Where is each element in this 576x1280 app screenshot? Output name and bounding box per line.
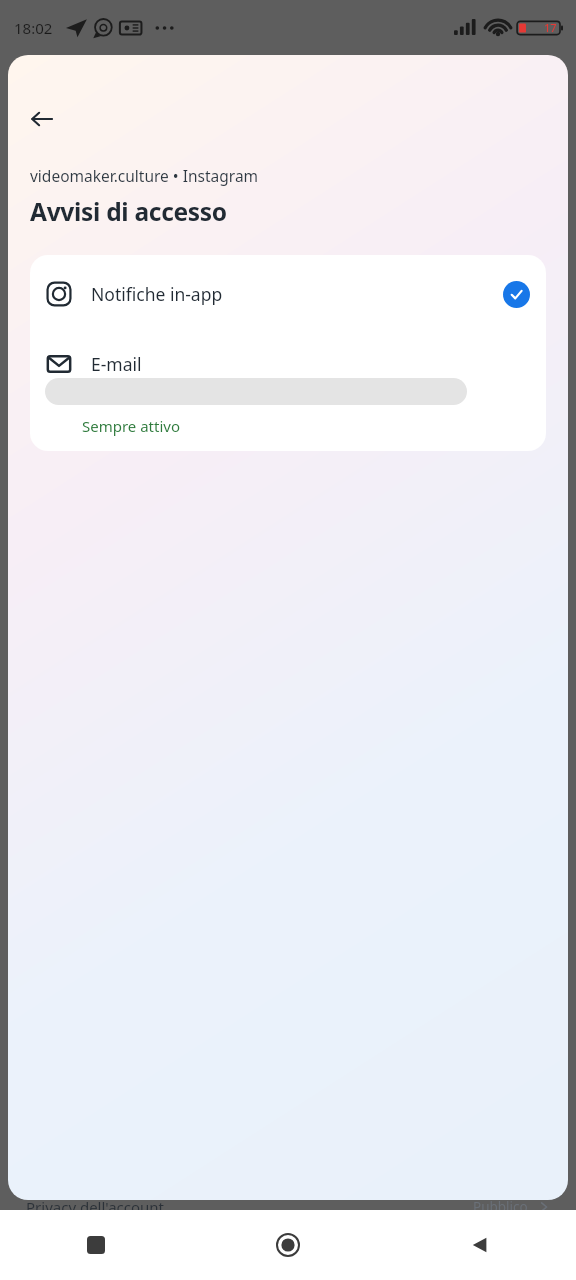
button[interactable]: Attivo [503,281,530,308]
button[interactable]: E-mail [30,333,546,395]
staticText: Sempre attivo [82,416,181,436]
button[interactable]: Home [192,1210,384,1280]
staticText: videomaker.culture • Instagram [30,165,259,186]
staticText: 18:02 [14,18,53,38]
button[interactable]: Indietro [18,95,66,143]
staticText: Notifiche in-app [91,282,223,306]
staticText: Privacy dell'account [26,1197,164,1217]
staticText: Pubblico [473,1198,528,1216]
staticText: E-mail [91,352,142,376]
button[interactable]: Indietro [384,1210,576,1280]
staticText: 17 [544,20,557,35]
button[interactable]: Recenti [0,1210,192,1280]
button[interactable]: Notifiche in-app [30,255,546,333]
staticText: Avvisi di accesso [30,195,227,228]
